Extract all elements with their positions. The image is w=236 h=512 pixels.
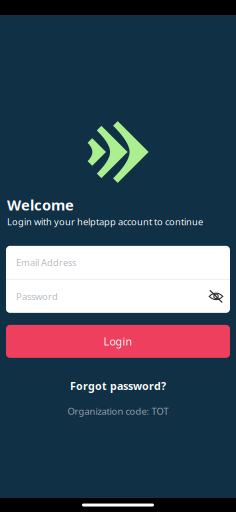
button[interactable]: Show password <box>204 280 228 313</box>
staticText: Welcome <box>7 195 74 214</box>
staticText: Password <box>16 290 58 303</box>
staticText: Forgot password? <box>70 379 166 393</box>
staticText: Email Address <box>16 256 76 269</box>
button[interactable]: Email Address <box>6 246 230 279</box>
button[interactable]: Login <box>6 325 230 358</box>
staticText: Login <box>103 334 132 348</box>
staticText: Login with your helptapp account to cont… <box>7 215 203 228</box>
staticText: Organization code: TOT <box>67 405 168 417</box>
button[interactable]: Forgot password? <box>62 376 174 396</box>
